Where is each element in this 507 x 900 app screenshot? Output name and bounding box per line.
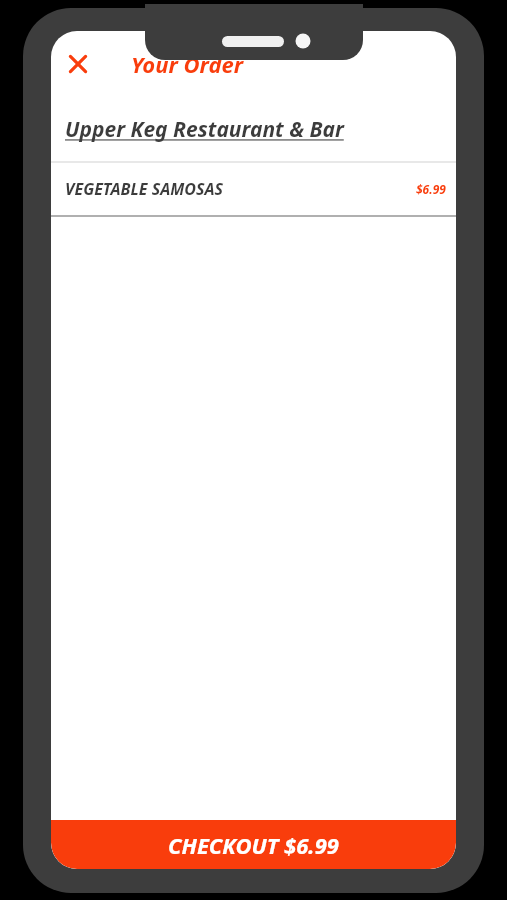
button[interactable]: Close	[51, 37, 105, 91]
button[interactable]: Upper Keg Restaurant & Bar	[51, 97, 456, 161]
staticText: Your Order	[131, 49, 244, 79]
staticText: CHECKOUT $6.99	[168, 830, 339, 860]
staticText: Upper Keg Restaurant & Bar	[65, 115, 344, 144]
staticText: VEGETABLE SAMOSAS	[65, 178, 223, 200]
staticText: $6.99	[416, 181, 446, 197]
button[interactable]: VEGETABLE SAMOSAS	[51, 163, 456, 215]
button[interactable]: CHECKOUT $6.99	[51, 820, 456, 869]
